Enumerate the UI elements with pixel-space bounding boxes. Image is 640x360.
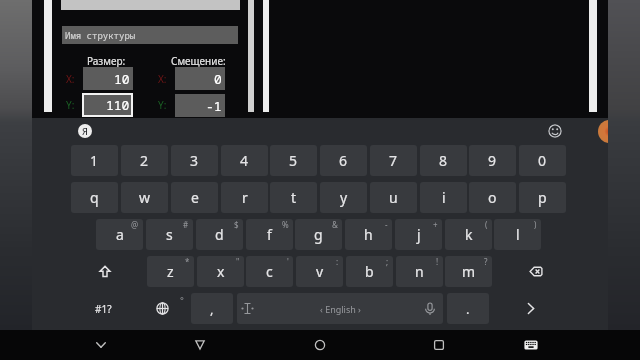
button[interactable]: , [191,293,233,324]
button[interactable]: Backspace [512,256,560,287]
button[interactable]: 6 [320,145,367,176]
button[interactable]: d [196,219,243,250]
button[interactable]: k [445,219,492,250]
button[interactable]: m [445,256,492,287]
staticText: Смещение: [171,54,226,68]
button[interactable]: 4 [221,145,268,176]
button[interactable]: a [96,219,143,250]
button[interactable]: Имя структуры [62,26,238,44]
button[interactable]: h [345,219,392,250]
staticText: ) [534,219,537,230]
staticText: ° [180,294,184,306]
button[interactable]: w [121,182,168,213]
button[interactable]: g [295,219,342,250]
staticText: ! [436,256,439,267]
staticText: @ [131,219,139,230]
staticText: - [385,219,388,230]
button[interactable]: 0 [519,145,566,176]
staticText: v [316,262,324,281]
button[interactable]: 2 [121,145,168,176]
staticText: n [415,262,424,281]
staticText: , [210,300,214,318]
button[interactable]: -1 [175,94,225,117]
button[interactable]: 10 [83,67,133,90]
staticText: 6 [339,151,348,170]
staticText: X: [158,72,167,86]
staticText: -1 [206,97,222,115]
button[interactable]: Home [298,330,342,360]
button[interactable]: u [370,182,417,213]
staticText: k [465,225,473,244]
staticText: $ [234,219,239,230]
staticText: y [340,188,348,207]
button[interactable]: 110 [82,93,133,117]
staticText: f [267,225,272,244]
staticText: a [116,225,124,244]
button[interactable]: Back [178,330,222,360]
button[interactable]: Yandex [78,124,92,138]
button[interactable]: 3 [171,145,218,176]
button[interactable]: e [171,182,218,213]
staticText: j [417,225,421,244]
button[interactable]: s [146,219,193,250]
staticText: Я [82,125,88,137]
button[interactable]: Switch keyboard [509,330,553,360]
button[interactable]: 9 [469,145,516,176]
staticText: l [516,225,520,244]
staticText: 1 [90,151,99,170]
staticText: i [442,188,446,207]
button[interactable]: Recents [417,330,461,360]
button[interactable]: y [320,182,367,213]
staticText: . [466,300,470,318]
button[interactable]: o [469,182,516,213]
staticText: 10 [114,70,130,88]
button[interactable]: Next [507,293,555,324]
button[interactable]: Shift [81,256,129,287]
staticText: 0 [214,70,222,88]
button[interactable]: Hide keyboard [79,330,123,360]
button[interactable]: t [270,182,317,213]
button[interactable]: 0 [175,67,225,90]
staticText: & [332,219,338,230]
staticText: 5 [289,151,298,170]
staticText: Имя структуры [65,29,136,41]
button[interactable]: n [396,256,443,287]
button[interactable]: x [197,256,244,287]
staticText: 2 [140,151,149,170]
staticText: ' [287,256,289,267]
button[interactable]: p [519,182,566,213]
staticText: u [389,188,398,207]
button[interactable]: l [494,219,541,250]
button[interactable]: ‹ English › [237,293,443,324]
button[interactable]: Change language [139,293,186,324]
staticText: s [166,225,173,244]
button[interactable]: Emoji [548,124,562,138]
button[interactable]: 8 [420,145,467,176]
staticText: 3 [190,151,199,170]
staticText: ? [484,256,488,267]
button[interactable]: q [71,182,118,213]
staticText: : [336,256,339,267]
staticText: 0 [538,151,547,170]
button[interactable]: j [395,219,442,250]
staticText: o [488,188,497,207]
button[interactable]: i [420,182,467,213]
button[interactable]: 1 [71,145,118,176]
button[interactable]: v [296,256,343,287]
button[interactable]: r [221,182,268,213]
button[interactable]: Assistant [598,120,608,143]
staticText: b [365,262,374,281]
staticText: X: [66,72,75,86]
button[interactable]: 7 [370,145,417,176]
staticText: d [215,225,224,244]
button[interactable]: 5 [270,145,317,176]
staticText: 110 [106,96,130,114]
button[interactable]: . [447,293,489,324]
staticText: " [236,256,240,267]
button[interactable]: b [346,256,393,287]
button[interactable]: #1? [80,293,127,324]
button[interactable]: z [147,256,194,287]
button[interactable]: c [246,256,293,287]
button[interactable]: f [246,219,293,250]
staticText: t [291,188,297,207]
